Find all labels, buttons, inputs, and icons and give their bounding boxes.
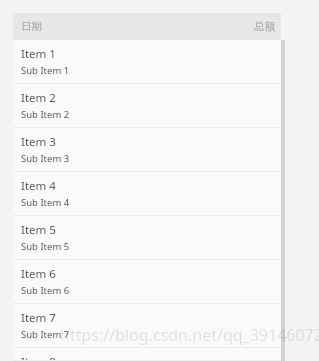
staticText: Item 3	[21, 134, 56, 150]
staticText: Sub Item 3	[21, 152, 70, 165]
staticText: 日期	[21, 20, 42, 33]
staticText: 总额	[254, 20, 275, 33]
staticText: Sub Item 2	[21, 108, 70, 121]
button[interactable]: Item 2	[13, 84, 281, 128]
staticText: Sub Item 1	[21, 64, 70, 77]
staticText: Item 2	[21, 90, 56, 106]
staticText: Item 1	[21, 46, 56, 62]
button[interactable]: Item 1	[13, 40, 281, 84]
staticText: Item 5	[21, 222, 56, 238]
staticText: Item 7	[21, 310, 56, 326]
staticText: Sub Item 6	[21, 284, 70, 297]
button[interactable]: 日期	[13, 13, 281, 40]
button[interactable]: Item 3	[13, 128, 281, 172]
staticText: Sub Item 4	[21, 196, 70, 209]
staticText: Item 6	[21, 266, 56, 282]
staticText: Sub Item 5	[21, 240, 70, 253]
staticText: https://blog.csdn.net/qq_39146072	[60, 324, 319, 346]
staticText: Sub Item 7	[21, 328, 70, 341]
button[interactable]: Item 7	[13, 304, 281, 348]
button[interactable]: Item 8	[13, 348, 281, 361]
button[interactable]: Item 5	[13, 216, 281, 260]
button[interactable]: Item 4	[13, 172, 281, 216]
button[interactable]: Item 6	[13, 260, 281, 304]
staticText: Item 4	[21, 178, 56, 194]
staticText: Item 8	[21, 354, 56, 360]
